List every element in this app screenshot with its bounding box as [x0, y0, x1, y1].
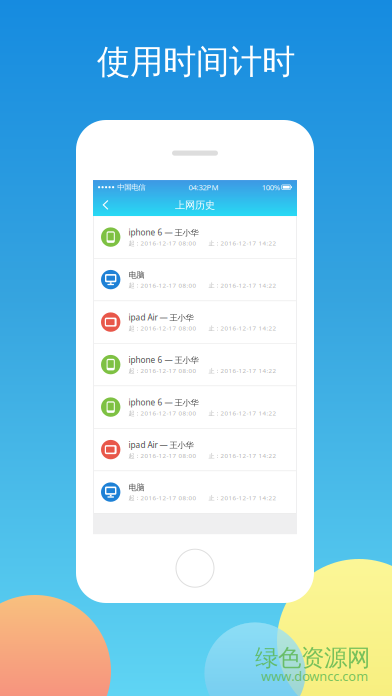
- staticText: 100%: [262, 182, 280, 192]
- staticText: 绿色资源网: [255, 643, 370, 673]
- staticText: 中国电信: [117, 182, 145, 192]
- button[interactable]: 电脑: [94, 259, 296, 301]
- staticText: 起：2016-12-17 08:00 止：2016-12-17 14:22: [128, 409, 276, 417]
- staticText: ipad Air — 王小华: [128, 312, 193, 323]
- button[interactable]: ipad Air — 王小华: [94, 429, 296, 471]
- button[interactable]: iphone 6 — 王小华: [94, 216, 296, 259]
- staticText: 起：2016-12-17 08:00 止：2016-12-17 14:22: [128, 281, 276, 289]
- staticText: 电脑: [128, 482, 144, 493]
- staticText: 起：2016-12-17 08:00 止：2016-12-17 14:22: [128, 324, 276, 332]
- staticText: 起：2016-12-17 08:00 止：2016-12-17 14:22: [128, 452, 276, 460]
- staticText: 电脑: [128, 270, 144, 280]
- button[interactable]: 返回: [96, 195, 116, 215]
- staticText: iphone 6 — 王小华: [128, 397, 198, 408]
- staticText: 使用时间计时: [97, 41, 295, 83]
- button[interactable]: iphone 6 — 王小华: [94, 344, 296, 386]
- staticText: 起：2016-12-17 08:00 止：2016-12-17 14:22: [128, 494, 276, 502]
- button[interactable]: iphone 6 — 王小华: [94, 386, 296, 429]
- staticText: 起：2016-12-17 08:00 止：2016-12-17 14:22: [128, 367, 276, 375]
- staticText: iphone 6 — 王小华: [128, 354, 198, 366]
- staticText: 04:32PM: [188, 182, 218, 192]
- button[interactable]: 电脑: [94, 471, 296, 514]
- staticText: www.downcc.com: [261, 667, 368, 685]
- staticText: iphone 6 — 王小华: [128, 227, 198, 238]
- staticText: ipad Air — 王小华: [128, 439, 193, 451]
- button[interactable]: ipad Air — 王小华: [94, 301, 296, 344]
- staticText: 上网历史: [175, 199, 215, 212]
- staticText: 起：2016-12-17 08:00 止：2016-12-17 14:22: [128, 239, 276, 247]
